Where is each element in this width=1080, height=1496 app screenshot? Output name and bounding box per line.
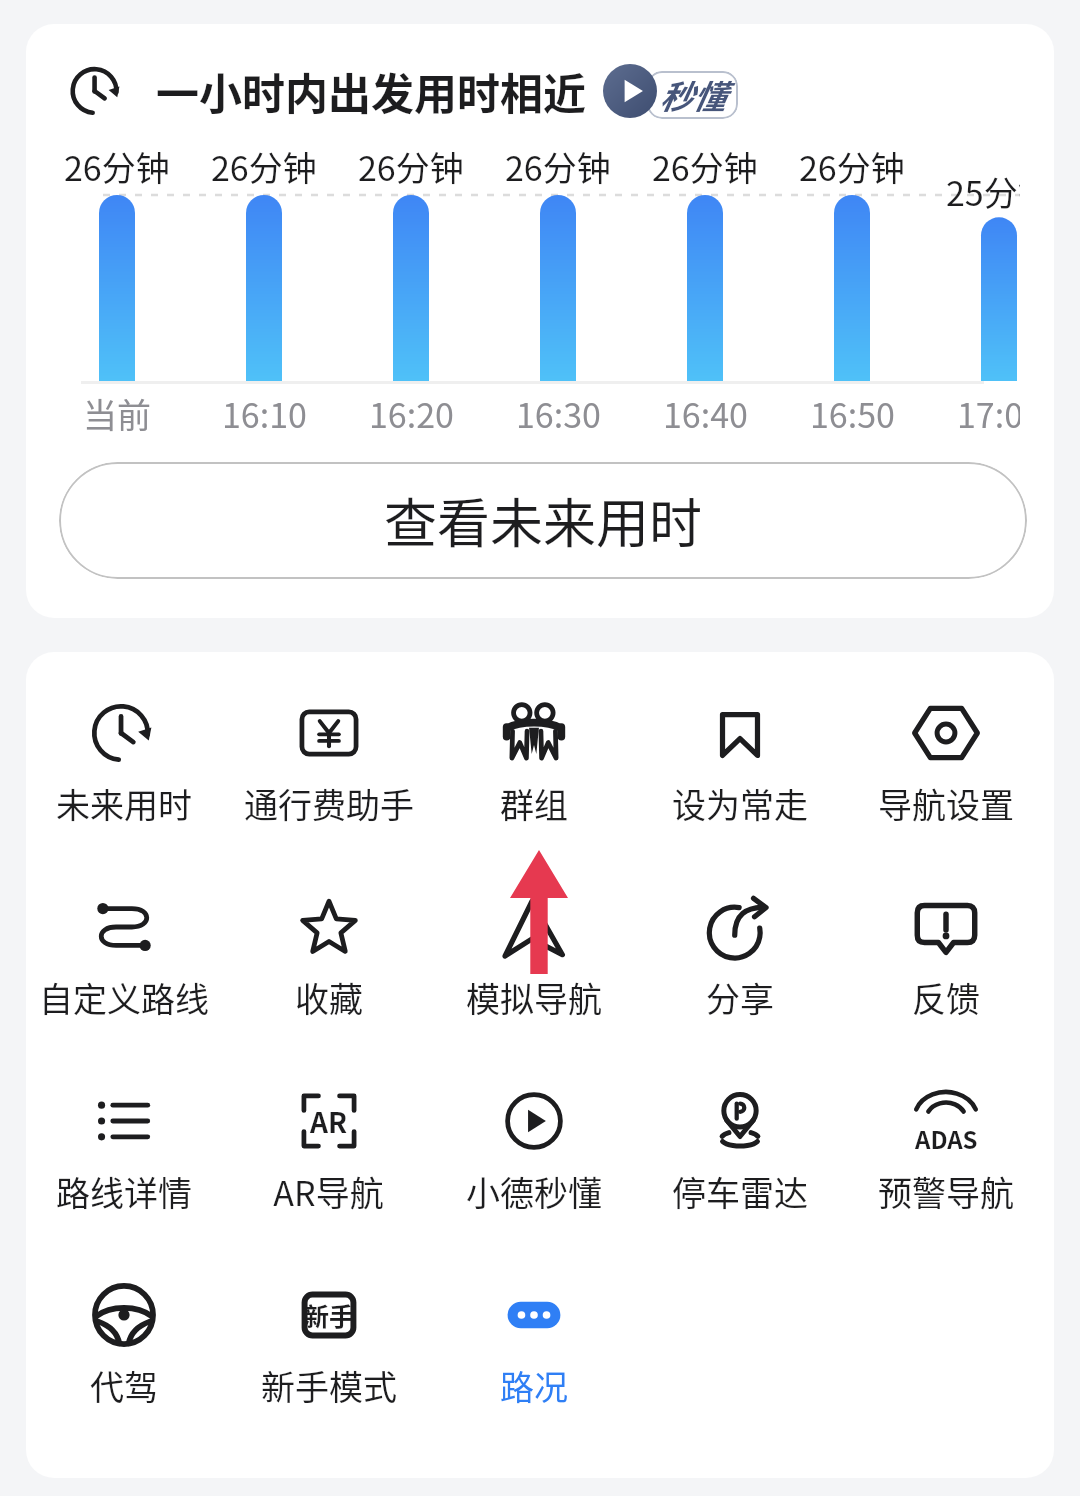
staticText: 代驾: [90, 1361, 158, 1410]
staticText: 16:20: [369, 389, 454, 438]
staticText: AR: [310, 1101, 348, 1142]
staticText: 查看未来用时: [384, 482, 702, 559]
button[interactable]: 通行费助手: [226, 700, 431, 894]
staticText: 秒懂: [659, 71, 725, 119]
button[interactable]: 群组: [431, 700, 637, 894]
staticText: 路线详情: [56, 1167, 192, 1216]
button[interactable]: 秒懂 video: [603, 63, 738, 119]
staticText: 停车雷达: [672, 1167, 808, 1216]
button[interactable]: 查看未来用时: [59, 462, 1027, 579]
button[interactable]: 未来用时: [26, 700, 226, 894]
staticText: AR导航: [273, 1167, 384, 1216]
staticText: 小德秒懂: [466, 1167, 602, 1216]
staticText: 新手模式: [261, 1361, 397, 1410]
staticText: 当前: [83, 389, 151, 438]
staticText: 16:30: [516, 389, 601, 438]
button[interactable]: 设为常走: [637, 700, 843, 894]
staticText: 模拟导航: [466, 973, 602, 1022]
staticText: 反馈: [912, 973, 980, 1022]
button[interactable]: 代驾: [26, 1282, 226, 1476]
staticText: 导航设置: [878, 779, 1014, 828]
staticText: 16:10: [222, 389, 307, 438]
button[interactable]: 停车雷达: [637, 1088, 843, 1282]
button[interactable]: 收藏: [226, 894, 431, 1088]
button[interactable]: 分享: [637, 894, 843, 1088]
staticText: 自定义路线: [39, 973, 209, 1022]
staticText: 一小时内出发用时相近: [156, 60, 586, 122]
staticText: 26分钟: [211, 142, 317, 191]
staticText: 分享: [706, 973, 774, 1022]
staticText: 17:00: [957, 389, 1020, 438]
staticText: 16:40: [663, 389, 748, 438]
button[interactable]: 自定义路线: [26, 894, 226, 1088]
staticText: 26分钟: [64, 142, 170, 191]
button[interactable]: ADAS: [843, 1088, 1049, 1282]
staticText: 新手: [304, 1297, 355, 1333]
button[interactable]: 模拟导航: [431, 894, 637, 1088]
button[interactable]: 路况: [431, 1282, 637, 1476]
button[interactable]: 路线详情: [26, 1088, 226, 1282]
staticText: 收藏: [295, 973, 363, 1022]
staticText: 设为常走: [672, 779, 808, 828]
button[interactable]: 反馈: [843, 894, 1049, 1088]
button[interactable]: 新手: [226, 1282, 431, 1476]
staticText: 26分钟: [799, 142, 905, 191]
staticText: 未来用时: [56, 779, 192, 828]
button[interactable]: 小德秒懂: [431, 1088, 637, 1282]
staticText: 26分钟: [652, 142, 758, 191]
staticText: 预警导航: [878, 1167, 1014, 1216]
button[interactable]: 导航设置: [843, 700, 1049, 894]
staticText: 16:50: [810, 389, 895, 438]
staticText: 群组: [500, 779, 568, 828]
staticText: 路况: [500, 1361, 568, 1410]
staticText: 25分钟: [946, 167, 1020, 216]
staticText: ADAS: [915, 1121, 978, 1156]
staticText: 26分钟: [358, 142, 464, 191]
button[interactable]: AR: [226, 1088, 431, 1282]
staticText: 26分钟: [505, 142, 611, 191]
staticText: 通行费助手: [244, 779, 414, 828]
